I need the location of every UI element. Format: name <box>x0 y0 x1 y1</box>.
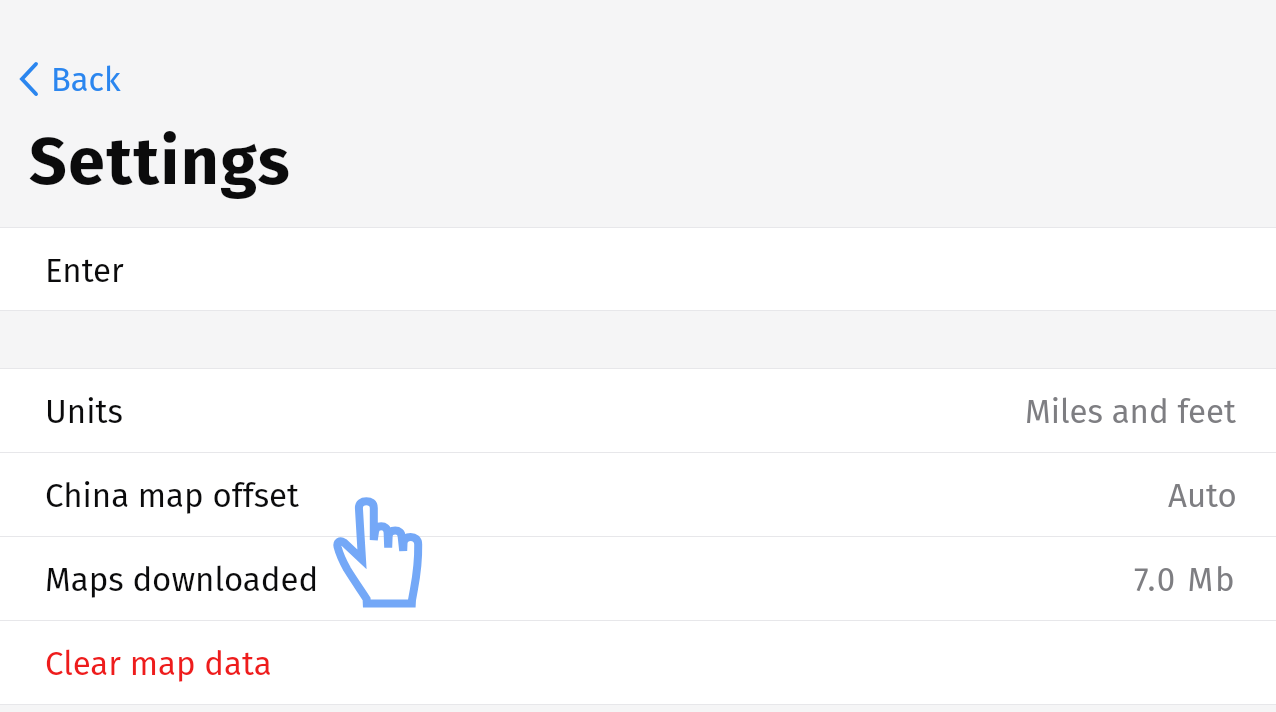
staticText: Maps downloaded <box>45 560 319 600</box>
staticText: Units <box>45 392 123 432</box>
staticText: Clear map data <box>45 644 272 684</box>
button[interactable]: Maps downloaded <box>0 537 1276 620</box>
staticText: Miles and feet <box>1025 392 1237 432</box>
staticText: Enter <box>45 251 124 291</box>
button[interactable]: Clear map data <box>0 621 1276 704</box>
staticText: China map offset <box>45 476 299 516</box>
button[interactable]: Enter <box>0 228 1276 310</box>
staticText: Settings <box>29 122 292 201</box>
other: Pointer <box>332 497 422 609</box>
staticText: Auto <box>1168 476 1237 516</box>
button[interactable]: Units <box>0 369 1276 452</box>
staticText: 7.0 Mb <box>1134 560 1237 600</box>
staticText: Back <box>51 61 121 100</box>
button[interactable]: China map offset <box>0 453 1276 536</box>
button[interactable]: Back <box>10 49 135 108</box>
